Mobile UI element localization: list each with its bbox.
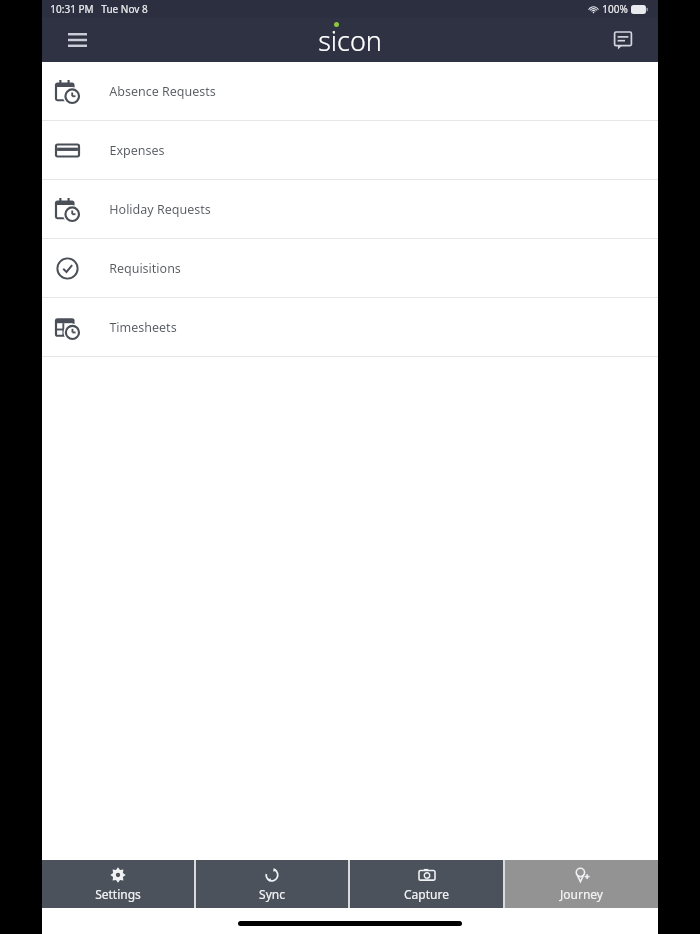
staticText: Expenses — [109, 142, 165, 159]
button[interactable]: Holiday Requests — [42, 180, 658, 238]
staticText: Tue Nov 8 — [101, 2, 148, 16]
staticText: 10:31 PM — [50, 2, 94, 16]
staticText: sicon — [318, 22, 382, 59]
button[interactable]: Timesheets — [42, 298, 658, 356]
button[interactable]: Sync — [196, 860, 348, 908]
button[interactable]: Expenses — [42, 121, 658, 179]
staticText: Journey — [560, 886, 603, 902]
button[interactable]: Requisitions — [42, 239, 658, 297]
button[interactable]: Capture — [350, 860, 503, 908]
staticText: Holiday Requests — [109, 201, 211, 218]
staticText: 100% — [602, 2, 628, 16]
staticText: Absence Requests — [109, 83, 216, 100]
button[interactable]: Settings — [42, 860, 194, 908]
staticText: Settings — [95, 886, 141, 902]
button[interactable]: Journey — [505, 860, 658, 908]
staticText: Requisitions — [109, 260, 181, 277]
button[interactable]: Open navigation menu — [60, 23, 94, 57]
staticText: Timesheets — [109, 319, 177, 336]
button[interactable]: Absence Requests — [42, 62, 658, 120]
staticText: Capture — [404, 886, 449, 902]
staticText: Sync — [259, 886, 285, 902]
button[interactable]: Messages — [606, 23, 640, 57]
